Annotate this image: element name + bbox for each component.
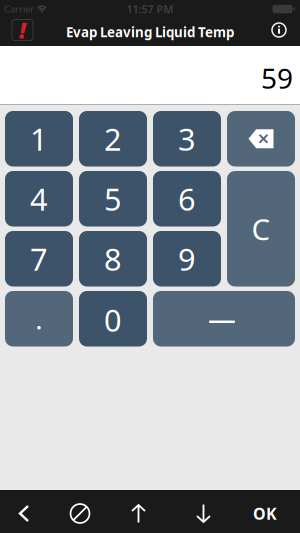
staticText: 8 [104,238,122,279]
button[interactable]: 8 [79,231,147,286]
staticText: 4 [30,178,48,219]
staticText: ! [19,15,26,45]
staticText: 9 [178,238,196,279]
staticText: 2 [104,118,122,159]
button[interactable]: Negative [153,291,295,346]
button[interactable]: 4 [5,171,73,226]
staticText: 11:57 PM [126,2,173,16]
button[interactable]: 3 [153,111,221,166]
staticText: 7 [30,238,48,279]
button[interactable]: 1 [5,111,73,166]
button[interactable]: 5 [79,171,147,226]
button[interactable]: OK [242,492,288,533]
staticText: C [251,209,270,248]
button[interactable]: Previous value [112,492,165,533]
button[interactable]: Next value [165,492,242,533]
staticText: 5 [104,178,122,219]
staticText: 6 [178,178,196,219]
button[interactable]: 9 [153,231,221,286]
button[interactable]: 2 [79,111,147,166]
staticText: 0 [104,299,122,340]
button[interactable]: Cancel [48,492,112,533]
button[interactable]: Back [0,492,48,533]
button[interactable]: Alarms [12,19,33,40]
button[interactable]: 6 [153,171,221,226]
staticText: Evap Leaving Liquid Temp [66,23,234,41]
button[interactable]: 0 [79,291,147,346]
staticText: 3 [178,118,196,159]
button[interactable]: Delete [227,111,295,166]
staticText: OK [253,503,277,524]
button[interactable]: Info [270,21,288,39]
button[interactable]: 7 [5,231,73,286]
staticText: Carrier [4,3,34,15]
button[interactable]: Decimal point [5,291,73,346]
button[interactable]: C [227,171,295,286]
staticText: 59 [261,59,293,97]
staticText: 1 [30,118,48,159]
